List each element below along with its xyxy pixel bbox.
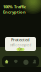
button[interactable]: Home [2, 56, 11, 67]
button[interactable]: Protection [11, 56, 20, 67]
staticText: On [18, 48, 22, 51]
staticText: Encryption [3, 9, 26, 15]
staticText: 100% Traffic [3, 4, 26, 9]
button[interactable]: Locations [20, 56, 30, 67]
staticText: Protected [11, 37, 30, 42]
staticText: traffic encrypted [9, 43, 31, 47]
button[interactable]: Account [30, 56, 39, 67]
button[interactable]: On [16, 48, 24, 51]
